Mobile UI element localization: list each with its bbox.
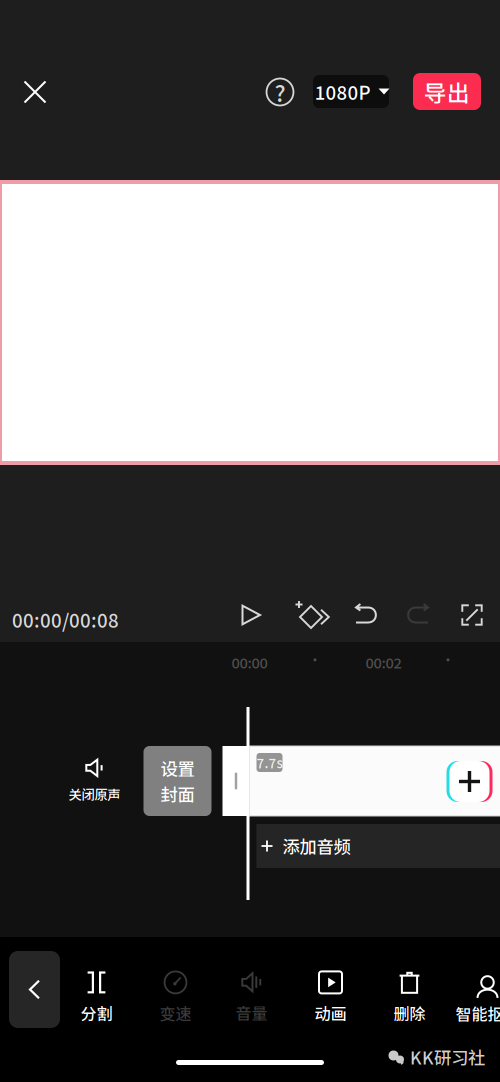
staticText: 关闭原声: [68, 784, 120, 804]
staticText: 导出: [424, 75, 470, 108]
button[interactable]: 关闭原声: [65, 754, 123, 808]
button[interactable]: Add clip: [446, 761, 492, 802]
staticText: 动画: [314, 1001, 346, 1025]
button[interactable]: Trim clip start: [222, 746, 249, 816]
staticText: ?: [274, 76, 285, 108]
button[interactable]: 分割: [57, 967, 136, 1029]
staticText: 添加音频: [282, 833, 350, 859]
staticText: 变速: [159, 1001, 191, 1025]
button[interactable]: Fullscreen: [457, 596, 487, 634]
staticText: 00:00: [231, 651, 267, 673]
staticText: 分割: [80, 1001, 112, 1025]
button[interactable]: 变速: [136, 967, 215, 1029]
button[interactable]: 添加音频: [256, 824, 500, 868]
button[interactable]: Undo: [350, 596, 380, 634]
button[interactable]: Close: [10, 67, 60, 117]
staticText: 00:02: [365, 651, 401, 673]
button[interactable]: 音量: [212, 967, 291, 1029]
button[interactable]: Play: [231, 596, 271, 634]
button[interactable]: Add keyframe: [294, 596, 330, 634]
staticText: 7.7s: [256, 753, 282, 772]
staticText: 音量: [235, 1001, 267, 1024]
button[interactable]: 导出: [413, 73, 481, 110]
staticText: 封面: [160, 781, 194, 807]
button[interactable]: Redo: [404, 596, 434, 634]
button[interactable]: Help: [260, 72, 300, 112]
staticText: 智能抠像: [455, 1002, 500, 1025]
button[interactable]: 1080P: [313, 75, 389, 108]
button[interactable]: 设置: [143, 746, 211, 816]
staticText: 00:00/00:08: [12, 606, 119, 633]
staticText: KK研习社: [410, 1044, 485, 1070]
button[interactable]: 删除: [370, 967, 449, 1029]
button[interactable]: 动画: [291, 967, 370, 1029]
staticText: 1080P: [314, 78, 370, 105]
button[interactable]: 智能抠像: [448, 967, 500, 1029]
staticText: 删除: [393, 1001, 425, 1025]
staticText: 设置: [160, 755, 194, 780]
button[interactable]: Back: [9, 951, 60, 1028]
